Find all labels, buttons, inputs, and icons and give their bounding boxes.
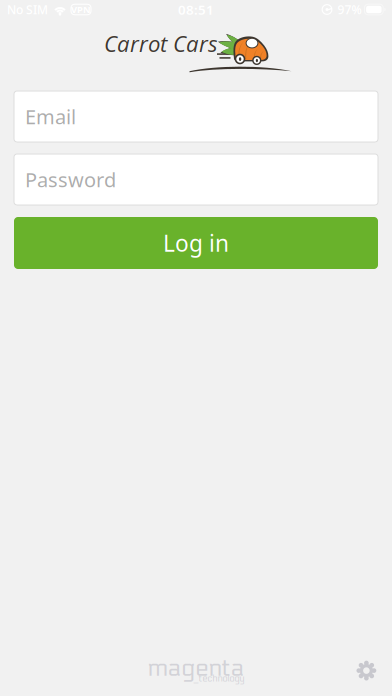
- staticText: 08:51: [178, 1, 214, 18]
- staticText: magenta: [147, 654, 244, 682]
- staticText: Password: [25, 166, 116, 193]
- button[interactable]: Email: [14, 91, 378, 142]
- staticText: 97%: [337, 1, 361, 17]
- button[interactable]: Settings: [357, 661, 376, 680]
- staticText: Email: [25, 103, 76, 130]
- staticText: Log in: [163, 228, 229, 258]
- button[interactable]: Log in: [14, 217, 378, 269]
- staticText: VPN: [71, 3, 91, 16]
- button[interactable]: Password: [14, 154, 378, 205]
- staticText: No SIM: [7, 1, 48, 17]
- staticText: Carrot Cars: [104, 28, 218, 58]
- staticText: _technology: [193, 673, 244, 684]
